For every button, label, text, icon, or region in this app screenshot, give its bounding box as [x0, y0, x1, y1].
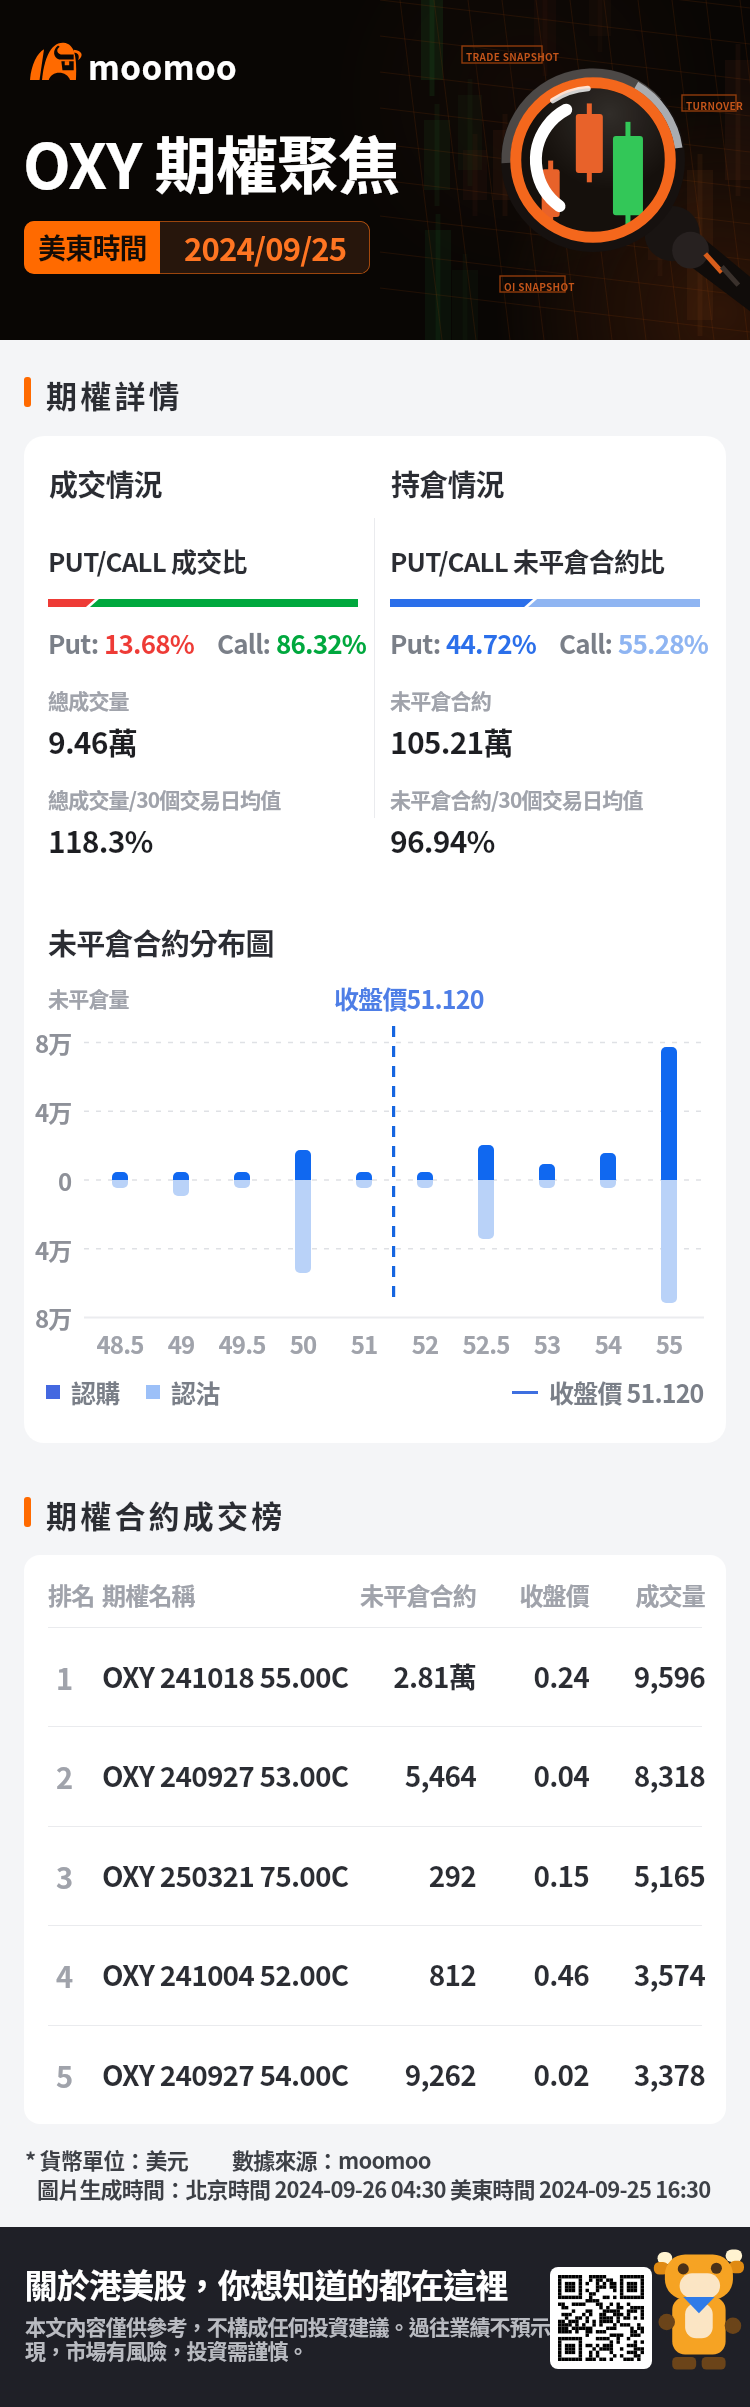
- staticText: 未平倉合約: [346, 1577, 476, 1612]
- staticText: 96.94%: [390, 818, 495, 861]
- button[interactable]: 2: [24, 1726, 726, 1825]
- staticText: 55: [639, 1326, 699, 1361]
- staticText: 4万: [35, 1232, 72, 1266]
- button[interactable]: Scan QR code: [550, 2267, 652, 2369]
- staticText: 3,378: [633, 2054, 705, 2095]
- staticText: 55.28%: [618, 624, 709, 662]
- staticText: 2: [56, 1755, 73, 1797]
- staticText: 48.5: [90, 1326, 150, 1361]
- staticText: 數據來源：moomoo: [232, 2143, 431, 2175]
- staticText: 8万: [35, 1025, 72, 1059]
- staticText: 3,574: [633, 1954, 705, 1995]
- staticText: 0.15: [533, 1855, 589, 1896]
- staticText: 52: [395, 1326, 455, 1361]
- staticText: 86.32%: [276, 624, 367, 662]
- staticText: 認購: [71, 1374, 120, 1410]
- staticText: 期權合約成交榜: [46, 1492, 286, 1537]
- staticText: 8万: [35, 1300, 72, 1334]
- staticText: 2.81萬: [393, 1656, 476, 1697]
- staticText: 9,596: [633, 1656, 705, 1697]
- button[interactable]: 4: [24, 1925, 726, 2024]
- staticText: 812: [428, 1954, 476, 1995]
- staticText: 53: [517, 1326, 577, 1361]
- staticText: 收盤價: [499, 1577, 589, 1612]
- staticText: 關於港美股，你想知道的都在這裡: [25, 2260, 508, 2308]
- staticText: 4万: [35, 1094, 72, 1128]
- staticText: 51: [334, 1326, 394, 1361]
- staticText: 0: [58, 1163, 72, 1197]
- staticText: 5,464: [404, 1755, 476, 1796]
- staticText: 44.72%: [446, 624, 537, 662]
- staticText: OXY 241018 55.00C: [102, 1656, 349, 1697]
- staticText: 認沽: [171, 1374, 220, 1410]
- staticText: OXY 241004 52.00C: [102, 1954, 349, 1995]
- staticText: 成交量: [615, 1577, 705, 1612]
- staticText: OXY 240927 54.00C: [102, 2054, 349, 2095]
- staticText: 現，市場有風險，投資需謹慎。: [25, 2335, 308, 2365]
- staticText: 排名: [48, 1577, 95, 1612]
- button[interactable]: 3: [24, 1826, 726, 1925]
- staticText: 105.21萬: [390, 719, 513, 762]
- staticText: 54: [578, 1326, 638, 1361]
- staticText: 49.5: [212, 1326, 272, 1361]
- staticText: Call:: [559, 624, 618, 662]
- staticText: 0.46: [533, 1954, 589, 1995]
- staticText: 期權詳情: [46, 372, 183, 417]
- staticText: 4: [56, 1954, 73, 1996]
- staticText: PUT/CALL 成交比: [48, 542, 247, 580]
- staticText: 美東時間: [38, 227, 147, 268]
- staticText: 8,318: [633, 1755, 705, 1796]
- staticText: 118.3%: [48, 818, 153, 861]
- staticText: OXY 期權聚焦: [23, 117, 400, 207]
- staticText: 2024/09/25: [184, 225, 347, 270]
- staticText: * 貨幣單位：美元: [25, 2143, 188, 2175]
- staticText: 本文內容僅供參考，不構成任何投資建議。過往業績不預示未來表: [25, 2311, 611, 2341]
- staticText: 49: [151, 1326, 211, 1361]
- staticText: 總成交量: [48, 685, 129, 715]
- staticText: 13.68%: [104, 624, 195, 662]
- staticText: TURNOVER: [686, 98, 744, 112]
- staticText: 期權名稱: [102, 1577, 195, 1612]
- staticText: 5,165: [633, 1855, 705, 1896]
- staticText: 50: [273, 1326, 333, 1361]
- staticText: 收盤價51.120: [334, 980, 484, 1016]
- button[interactable]: 1: [24, 1627, 726, 1726]
- staticText: 未平倉合約/30個交易日均值: [390, 784, 643, 814]
- staticText: 0.02: [533, 2054, 589, 2095]
- staticText: 成交情況: [49, 462, 162, 504]
- staticText: 0.04: [533, 1755, 589, 1796]
- staticText: 52.5: [456, 1326, 516, 1361]
- staticText: 9.46萬: [48, 719, 137, 762]
- staticText: OXY 250321 75.00C: [102, 1855, 349, 1896]
- staticText: 0.24: [533, 1656, 589, 1697]
- staticText: 1: [56, 1656, 73, 1698]
- staticText: OXY 240927 53.00C: [102, 1755, 349, 1796]
- staticText: 未平倉合約: [390, 685, 491, 715]
- button[interactable]: 美東時間: [24, 221, 370, 274]
- staticText: PUT/CALL 未平倉合約比: [390, 542, 665, 580]
- staticText: 圖片生成時間：北京時間 2024-09-26 04:30 美東時間 2024-0…: [37, 2172, 711, 2204]
- staticText: 收盤價 51.120: [549, 1374, 704, 1410]
- staticText: 3: [56, 1855, 73, 1897]
- staticText: OI SNAPSHOT: [504, 279, 575, 293]
- staticText: moomoo: [88, 42, 238, 90]
- staticText: Put:: [48, 624, 104, 662]
- staticText: 292: [428, 1855, 476, 1896]
- staticText: 9,262: [404, 2054, 476, 2095]
- button[interactable]: 5: [24, 2025, 726, 2124]
- staticText: Call:: [217, 624, 276, 662]
- staticText: 未平倉量: [48, 983, 129, 1013]
- staticText: 未平倉合約分布圖: [48, 921, 274, 963]
- staticText: TRADE SNAPSHOT: [466, 49, 560, 63]
- staticText: Put:: [390, 624, 446, 662]
- staticText: 總成交量/30個交易日均值: [48, 784, 281, 814]
- staticText: 持倉情況: [391, 462, 504, 504]
- staticText: 5: [56, 2054, 73, 2096]
